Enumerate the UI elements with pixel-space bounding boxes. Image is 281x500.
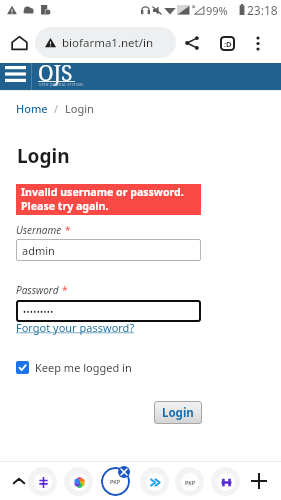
staticText: Login bbox=[65, 101, 94, 116]
staticText: Username bbox=[16, 223, 62, 237]
staticText: PKP bbox=[110, 478, 121, 485]
button[interactable]: Menu bbox=[0, 63, 31, 90]
staticText: biofarma1.net/in bbox=[62, 35, 154, 51]
button[interactable]: Browser tab bbox=[98, 464, 132, 498]
button[interactable]: Browser tab bbox=[208, 464, 242, 498]
button[interactable]: Browser tab bbox=[172, 464, 206, 498]
staticText: Login bbox=[162, 405, 194, 421]
button[interactable]: Login bbox=[154, 401, 202, 424]
staticText: ••••••••• bbox=[23, 306, 54, 317]
button[interactable]: More options bbox=[245, 30, 271, 56]
button[interactable]: Browser tab bbox=[61, 464, 95, 498]
staticText: Forgot your password? bbox=[16, 320, 135, 335]
staticText: 99% bbox=[206, 3, 228, 18]
button[interactable]: ••••••••• bbox=[16, 300, 201, 322]
button[interactable]: New tab bbox=[246, 468, 272, 494]
staticText: admin bbox=[22, 243, 55, 258]
button[interactable]: Expand tab switcher bbox=[6, 468, 32, 494]
staticText: Please try again. bbox=[21, 199, 109, 213]
staticText: / bbox=[54, 101, 59, 116]
button[interactable]: admin bbox=[16, 239, 201, 261]
staticText: :D bbox=[224, 39, 232, 49]
staticText: 23:18 bbox=[247, 2, 278, 18]
button[interactable]: Browser tab bbox=[25, 464, 59, 498]
button[interactable]: Home bbox=[5, 29, 33, 57]
staticText: * bbox=[65, 223, 71, 237]
button[interactable]: Switch tabs bbox=[214, 30, 240, 56]
staticText: Home bbox=[16, 101, 48, 116]
button[interactable]: Browser tab bbox=[137, 464, 171, 498]
button[interactable]: Forgot your password? bbox=[16, 320, 135, 335]
button[interactable]: Keep me logged in bbox=[16, 360, 132, 375]
staticText: Login bbox=[17, 143, 70, 169]
staticText: * bbox=[62, 283, 68, 297]
button[interactable]: biofarma1.net/in bbox=[35, 27, 176, 58]
button[interactable]: Home bbox=[16, 101, 48, 116]
staticText: PKP bbox=[185, 479, 196, 486]
staticText: Invalid username or password. bbox=[21, 185, 184, 199]
button[interactable]: Share bbox=[179, 30, 205, 56]
staticText: Keep me logged in bbox=[35, 360, 132, 375]
staticText: Password bbox=[16, 283, 59, 297]
staticText: OJS bbox=[38, 59, 73, 86]
staticText: OPEN JOURNAL SYSTEMS bbox=[39, 83, 84, 87]
